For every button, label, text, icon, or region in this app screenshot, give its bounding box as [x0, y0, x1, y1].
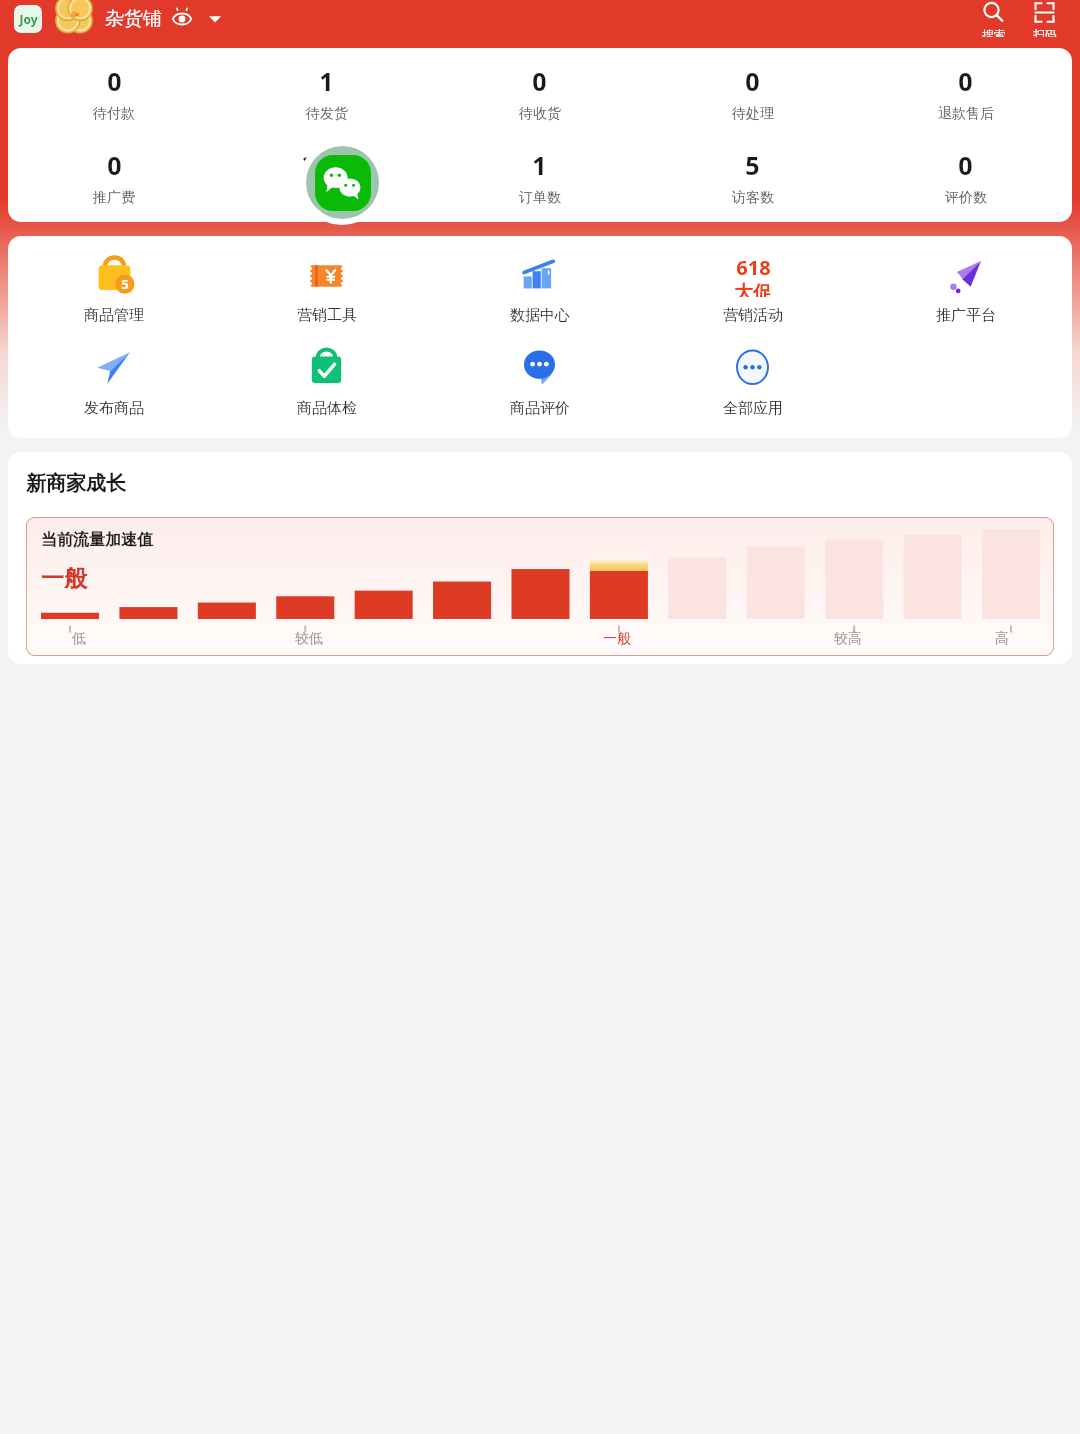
staticText: 推广平台 [936, 306, 996, 325]
staticText: 0 [958, 64, 973, 98]
button[interactable]: 数据中心 [433, 252, 646, 327]
staticText: 5 [745, 148, 760, 182]
button[interactable]: Switch shop [205, 9, 225, 29]
staticText: 订单数 [519, 189, 561, 207]
button[interactable]: 5 [8, 252, 220, 327]
staticText: 待付款 [93, 105, 135, 123]
staticText: 商品体检 [297, 399, 357, 418]
staticText: 618 [736, 254, 771, 281]
button[interactable]: Search [979, 0, 1008, 37]
staticText: 0 [107, 148, 122, 182]
button[interactable]: 0 [646, 62, 859, 125]
staticText: 扫码 [1033, 27, 1057, 37]
staticText: 0 [107, 64, 122, 98]
staticText: 待发货 [306, 105, 348, 123]
button[interactable]: 0 [433, 62, 646, 125]
staticText: 0 [532, 64, 547, 98]
staticText: 全部应用 [723, 399, 783, 418]
staticText: 一般 [603, 630, 631, 648]
staticText: 当前流量加速值 [41, 530, 153, 550]
staticText: 0 [958, 148, 973, 182]
button[interactable]: 当前流量加速值 [26, 517, 1054, 656]
staticText: 推广费 [93, 189, 135, 207]
staticText: 较高 [834, 630, 862, 648]
staticText: 搜索 [982, 27, 1006, 37]
staticText: 营销活动 [723, 306, 783, 325]
staticText: 大促 [734, 281, 772, 297]
button[interactable]: WeChat customer service [299, 139, 385, 225]
staticText: 新商家成长 [26, 471, 126, 496]
staticText: 成交额 [306, 189, 348, 207]
button[interactable]: 商品评价 [433, 345, 646, 420]
staticText: 商品评价 [510, 399, 570, 418]
staticText: 发布商品 [84, 399, 144, 418]
button[interactable]: 618 [646, 252, 859, 327]
staticText: 5 [121, 275, 129, 293]
staticText: 待收货 [519, 105, 561, 123]
button[interactable]: 全部应用 [646, 345, 859, 420]
button[interactable]: 1 [220, 62, 433, 125]
button[interactable]: Scan code [1030, 0, 1059, 37]
staticText: 评价数 [945, 189, 987, 207]
button[interactable]: 商品体检 [220, 345, 433, 420]
staticText: 1 [532, 148, 547, 182]
staticText: 39.4 [302, 148, 352, 182]
staticText: 退款售后 [938, 105, 994, 123]
button[interactable]: 发布商品 [8, 345, 220, 420]
staticText: 1 [319, 64, 334, 98]
button[interactable]: 1 [433, 146, 646, 209]
staticText: 营销工具 [297, 306, 357, 325]
staticText: 杂货铺 [105, 7, 162, 31]
button[interactable]: 推广平台 [859, 252, 1072, 327]
button[interactable]: 营销工具 [220, 252, 433, 327]
button[interactable]: 39.4 [220, 146, 433, 209]
staticText: 访客数 [732, 189, 774, 207]
staticText: 商品管理 [84, 306, 144, 325]
staticText: 数据中心 [510, 306, 570, 325]
staticText: 0 [745, 64, 760, 98]
staticText: 待处理 [732, 105, 774, 123]
button[interactable]: 5 [646, 146, 859, 209]
staticText: Joy [19, 11, 38, 27]
button[interactable]: 0 [859, 62, 1072, 125]
button[interactable]: 0 [8, 146, 220, 209]
button[interactable]: Joy [14, 5, 42, 33]
staticText: 高 [995, 630, 1009, 648]
staticText: 低 [72, 630, 86, 648]
staticText: 较低 [295, 630, 323, 648]
button[interactable]: 0 [8, 62, 220, 125]
staticText: 一般 [41, 564, 87, 593]
button[interactable]: Shop preview [171, 8, 193, 30]
button[interactable]: 0 [859, 146, 1072, 209]
